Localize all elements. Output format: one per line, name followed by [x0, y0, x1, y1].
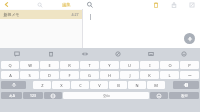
staticText: O — [168, 63, 172, 68]
button[interactable]: O — [160, 61, 179, 69]
staticText: A — [9, 73, 12, 78]
button[interactable]: Switch keyboard — [44, 92, 62, 99]
staticText: 123 — [30, 93, 36, 98]
button[interactable]: N — [128, 81, 146, 89]
staticText: Q — [8, 63, 12, 68]
button[interactable]: L — [160, 71, 179, 79]
staticText: G — [88, 73, 91, 78]
button[interactable]: Suggestion 4 — [101, 48, 134, 59]
button[interactable]: Compose — [188, 1, 196, 9]
staticText: L — [168, 73, 171, 78]
button[interactable]: Suggestion 2 — [34, 48, 68, 59]
staticText: B — [117, 83, 120, 88]
button[interactable]: New note — [184, 33, 195, 44]
button[interactable]: J — [120, 71, 139, 79]
button[interactable]: Shift — [1, 81, 26, 89]
button[interactable]: 123 — [23, 92, 43, 99]
button[interactable]: B — [109, 81, 127, 89]
staticText: 改行 — [181, 94, 188, 98]
button[interactable]: W — [20, 61, 39, 69]
staticText: K — [148, 73, 151, 78]
staticText: H — [108, 73, 111, 78]
button[interactable]: Search — [86, 1, 94, 9]
staticText: I — [149, 63, 151, 68]
staticText: Y — [108, 63, 111, 68]
button[interactable]: D — [40, 71, 59, 79]
button[interactable]: Y — [100, 61, 119, 69]
button[interactable]: F — [60, 71, 79, 79]
staticText: V — [98, 83, 101, 88]
button[interactable]: Q — [1, 61, 19, 69]
staticText: U — [128, 63, 131, 68]
staticText: N — [135, 83, 139, 88]
button[interactable]: Suggestion 3 — [68, 48, 101, 59]
button[interactable]: V — [90, 81, 108, 89]
button[interactable]: U — [120, 61, 139, 69]
button[interactable]: 新規メモ — [3, 10, 79, 19]
staticText: J — [129, 73, 131, 78]
button[interactable]: 改行 — [169, 92, 199, 99]
button[interactable]: P — [180, 61, 199, 69]
staticText: D — [48, 73, 51, 78]
button[interactable]: G — [80, 71, 99, 79]
button[interactable]: Share — [170, 1, 178, 9]
button[interactable]: Suggestion 5 — [134, 48, 167, 59]
button[interactable]: Delete — [173, 81, 199, 89]
button[interactable]: K — [140, 71, 159, 79]
staticText: W — [28, 63, 32, 68]
staticText: C — [79, 83, 82, 88]
button[interactable]: H — [100, 71, 119, 79]
button[interactable]: 空白 — [63, 92, 149, 99]
staticText: P — [188, 63, 191, 68]
staticText: M — [154, 83, 158, 88]
staticText: 4:27 — [71, 12, 79, 17]
button[interactable]: X — [52, 81, 70, 89]
staticText: ー — [188, 73, 192, 78]
staticText: S — [28, 73, 31, 78]
button[interactable]: I — [140, 61, 159, 69]
button[interactable]: Emoji — [150, 92, 168, 99]
button[interactable]: E — [40, 61, 59, 69]
staticText: T — [88, 63, 91, 68]
button[interactable]: T — [80, 61, 99, 69]
button[interactable]: Suggestion 6 — [167, 48, 200, 59]
button[interactable]: Back — [2, 0, 11, 9]
staticText: 新規メモ — [3, 12, 20, 17]
staticText: X — [60, 83, 63, 88]
button[interactable]: 編集 — [62, 2, 71, 7]
staticText: R — [68, 63, 71, 68]
staticText: 編集 — [62, 2, 71, 7]
button[interactable]: Z — [33, 81, 51, 89]
staticText: F — [68, 73, 71, 78]
button[interactable]: Suggestion 1 — [0, 48, 34, 59]
button[interactable]: M — [147, 81, 165, 89]
staticText: あA — [9, 93, 15, 98]
button[interactable]: R — [60, 61, 79, 69]
button[interactable]: Delete — [152, 1, 160, 9]
button[interactable]: A — [1, 71, 19, 79]
button[interactable]: S — [20, 71, 39, 79]
staticText: E — [48, 63, 51, 68]
staticText: Z — [41, 83, 44, 88]
staticText: 空白 — [103, 94, 110, 98]
button[interactable]: C — [71, 81, 89, 89]
button[interactable]: ー — [180, 71, 199, 79]
button[interactable]: あA — [1, 92, 22, 99]
